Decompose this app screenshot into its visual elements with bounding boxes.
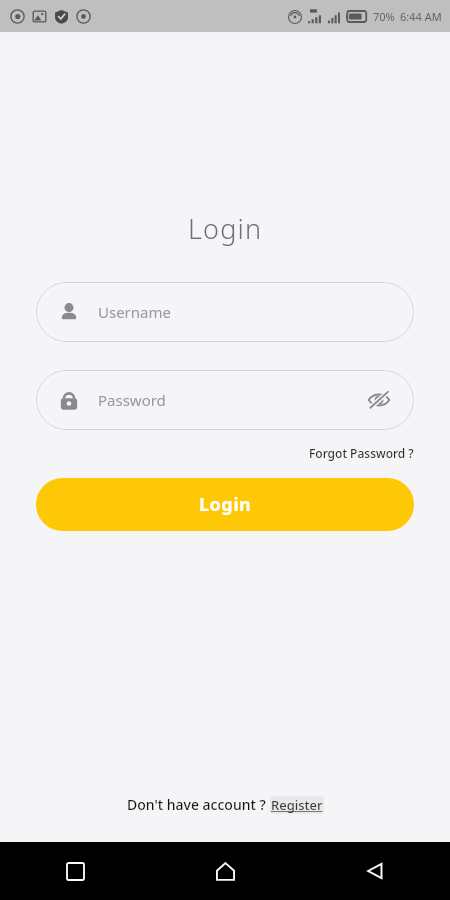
button[interactable]: Toggle password visibility: [366, 387, 392, 413]
staticText: 6:44 AM: [400, 9, 442, 24]
staticText: Password: [98, 390, 166, 410]
staticText: Forgot Password ?: [309, 445, 414, 461]
staticText: Don't have account ?: [127, 795, 270, 814]
button[interactable]: Register: [270, 796, 324, 814]
button[interactable]: Home: [150, 842, 300, 900]
button[interactable]: Login: [36, 478, 414, 531]
button[interactable]: Recents: [0, 842, 150, 900]
staticText: 70%: [373, 9, 395, 24]
staticText: Login: [199, 492, 252, 517]
button[interactable]: Password: [36, 370, 414, 430]
button[interactable]: Back: [300, 842, 450, 900]
staticText: Login: [188, 210, 263, 247]
staticText: Register: [271, 796, 323, 814]
button[interactable]: Username: [36, 282, 414, 342]
staticText: Username: [98, 302, 171, 322]
button[interactable]: Forgot Password ?: [307, 443, 416, 463]
